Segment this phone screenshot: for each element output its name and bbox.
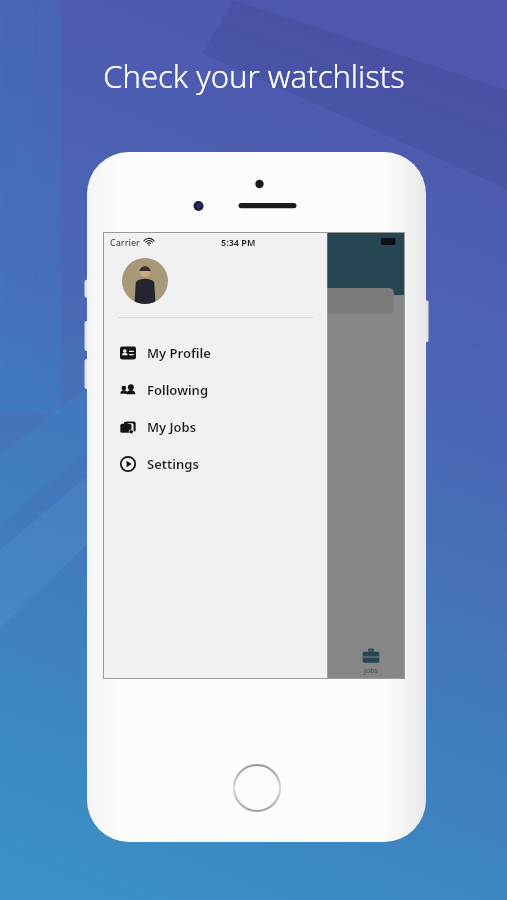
staticText: Settings [147, 455, 199, 473]
staticText: Check your watchlists [103, 55, 405, 97]
staticText: Carrier [110, 236, 140, 248]
staticText: 5:34 PM [221, 236, 256, 248]
staticText: My Jobs [147, 418, 197, 436]
staticText: Jobs [118, 260, 162, 289]
staticText: Following [147, 381, 209, 399]
button[interactable]: Search [114, 288, 394, 314]
button[interactable]: My Jobs [104, 408, 327, 445]
staticText: Sydney NSW, Australia [118, 380, 233, 395]
staticText: Search [143, 293, 181, 309]
other: Home [231, 762, 283, 814]
button[interactable]: Jobs tab [338, 644, 404, 678]
button[interactable]: iOS Developer [104, 321, 404, 395]
button[interactable]: Settings [104, 445, 327, 482]
button[interactable] [104, 233, 404, 678]
button[interactable]: My Profile [104, 334, 327, 371]
staticText: Jobs [364, 666, 378, 676]
staticText: My Profile [147, 344, 211, 362]
staticText: Techerbell [118, 346, 180, 362]
button[interactable]: Following [104, 371, 327, 408]
